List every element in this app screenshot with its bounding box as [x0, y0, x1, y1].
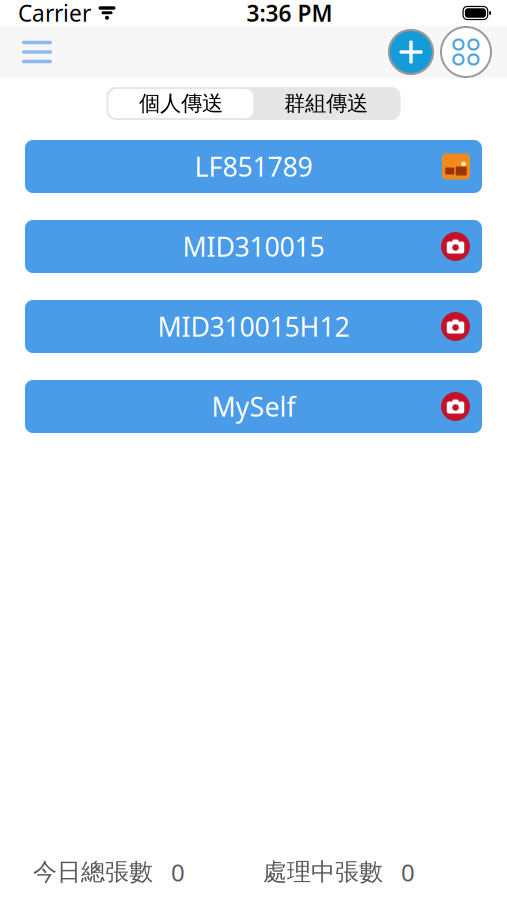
- staticText: 個人傳送: [139, 90, 223, 117]
- staticText: 今日總張數: [33, 857, 153, 887]
- staticText: 0: [171, 856, 185, 888]
- staticText: MySelf: [211, 389, 295, 424]
- button[interactable]: 個人傳送: [108, 89, 253, 118]
- staticText: Carrier: [18, 0, 91, 28]
- button[interactable]: MID310015: [25, 220, 482, 273]
- staticText: 3:36 PM: [247, 0, 333, 28]
- button[interactable]: Apps: [437, 26, 495, 78]
- staticText: LF851789: [194, 149, 312, 184]
- staticText: 0: [401, 856, 415, 888]
- button[interactable]: 群組傳送: [253, 89, 398, 118]
- button[interactable]: MySelf: [25, 380, 482, 433]
- button[interactable]: LF851789: [25, 140, 482, 193]
- button[interactable]: Add: [385, 26, 437, 78]
- staticText: 處理中張數: [263, 857, 383, 887]
- staticText: MID310015: [182, 229, 324, 264]
- button[interactable]: Menu: [14, 30, 60, 74]
- staticText: MID310015H12: [157, 309, 349, 344]
- staticText: 群組傳送: [284, 90, 368, 117]
- button[interactable]: MID310015H12: [25, 300, 482, 353]
